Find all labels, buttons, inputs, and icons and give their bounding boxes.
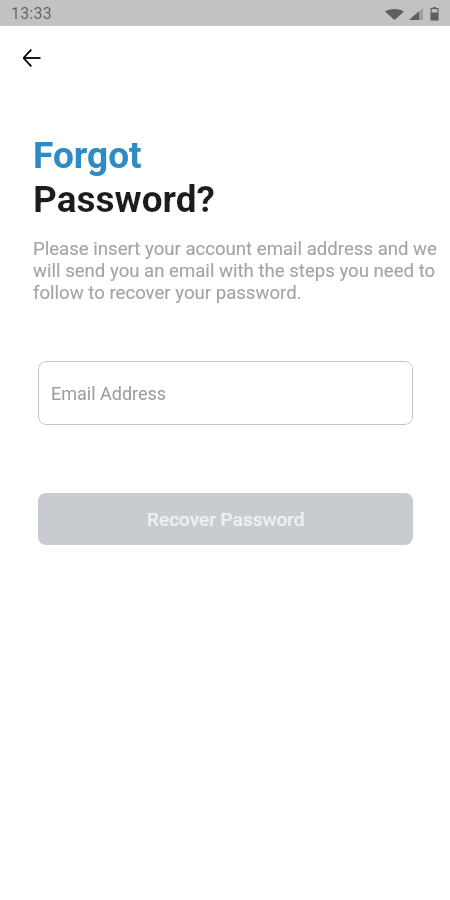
staticText: Email Address (51, 383, 167, 404)
staticText: Forgot (33, 134, 142, 178)
staticText: 13:33 (11, 4, 52, 23)
button[interactable]: Back (8, 34, 55, 81)
staticText: Please insert your account email address… (33, 238, 439, 304)
button[interactable]: Email Address (38, 361, 413, 425)
button[interactable]: Recover Password (38, 493, 413, 545)
staticText: Recover Password (147, 508, 305, 530)
staticText: Password? (33, 178, 215, 222)
